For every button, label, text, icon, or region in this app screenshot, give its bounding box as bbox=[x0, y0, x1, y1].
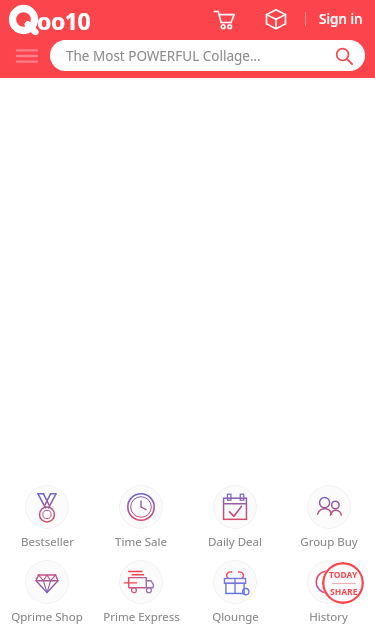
button[interactable]: Bestseller bbox=[0, 485, 94, 550]
button[interactable]: Today Share bbox=[322, 562, 364, 604]
staticText: TODAY bbox=[329, 569, 358, 581]
staticText: Time Sale bbox=[115, 534, 167, 550]
staticText: Bestseller bbox=[21, 534, 74, 550]
button[interactable]: History bbox=[282, 560, 375, 625]
staticText: Group Buy bbox=[300, 534, 358, 550]
button[interactable]: Time Sale bbox=[94, 485, 188, 550]
staticText: Qprime Shop bbox=[11, 609, 83, 625]
button[interactable]: Sign in bbox=[317, 4, 365, 34]
staticText: oo10 bbox=[37, 5, 91, 33]
button[interactable]: The Most POWERFUL Collage... bbox=[50, 40, 365, 71]
staticText: SHARE bbox=[330, 586, 358, 598]
staticText: Sign in bbox=[319, 10, 363, 28]
button[interactable]: Cart bbox=[207, 2, 241, 36]
staticText: Prime Express bbox=[103, 609, 180, 625]
button[interactable]: My orders bbox=[259, 2, 293, 36]
staticText: Daily Deal bbox=[208, 534, 262, 550]
staticText: History bbox=[309, 609, 348, 625]
button[interactable]: Qoo10 home bbox=[10, 5, 114, 33]
button[interactable]: Menu bbox=[8, 38, 46, 73]
staticText: The Most POWERFUL Collage... bbox=[66, 47, 335, 65]
button[interactable]: Group Buy bbox=[282, 485, 375, 550]
button[interactable]: Prime Express bbox=[94, 560, 188, 625]
button[interactable]: Daily Deal bbox=[188, 485, 282, 550]
staticText: Qlounge bbox=[212, 609, 259, 625]
button[interactable]: Qlounge bbox=[188, 560, 282, 625]
button[interactable]: Qprime Shop bbox=[0, 560, 94, 625]
